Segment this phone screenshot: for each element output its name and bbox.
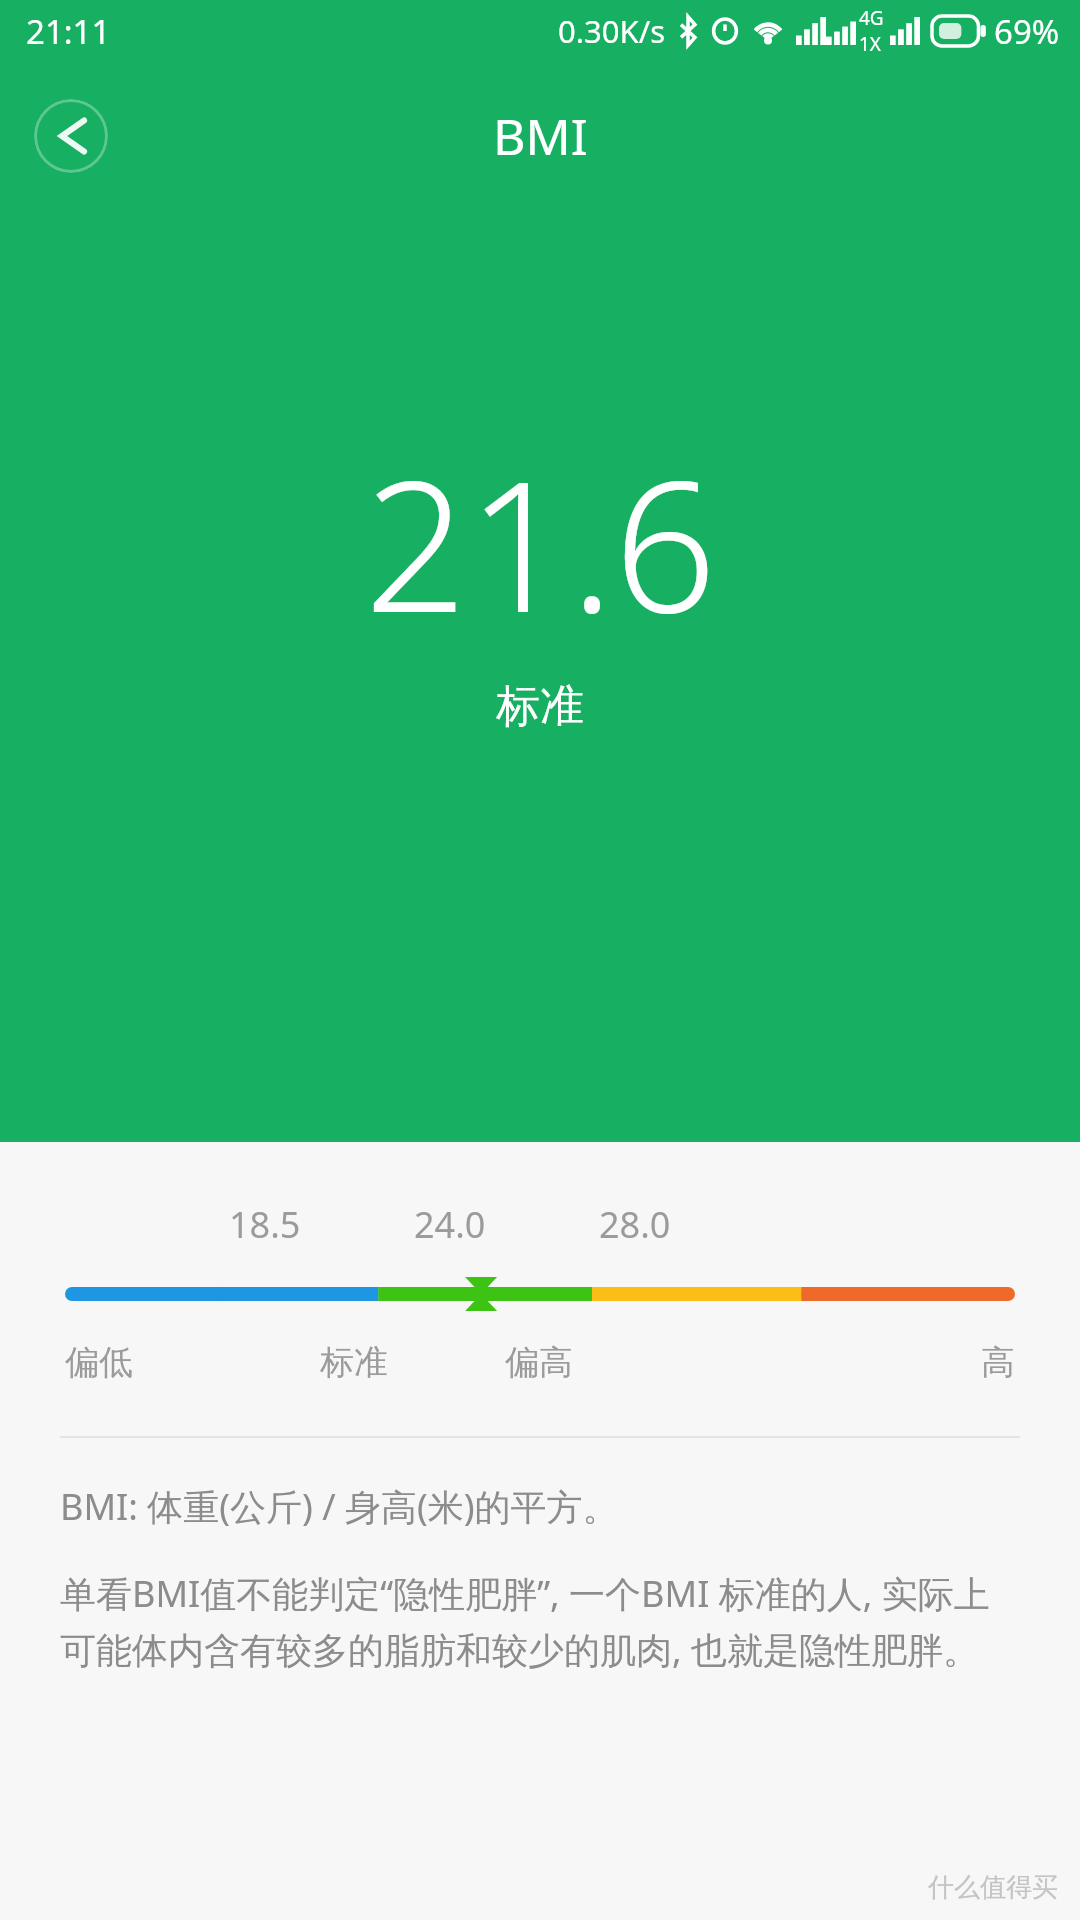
staticText: 28.0 <box>599 1200 671 1246</box>
staticText: 偏高 <box>505 1341 573 1384</box>
staticText: 18.5 <box>229 1200 301 1246</box>
staticText: 偏低 <box>65 1341 133 1384</box>
staticText: 1X <box>859 31 882 57</box>
staticText: 高 <box>981 1341 1015 1384</box>
staticText: 标准 <box>496 679 584 734</box>
staticText: 4G <box>859 5 884 31</box>
button[interactable]: Back <box>34 99 108 173</box>
staticText: 21.6 <box>364 420 717 665</box>
staticText: BMI <box>493 102 588 170</box>
staticText: 单看BMI值不能判定“隐性肥胖”, 一个BMI 标准的人, 实际上可能体内含有较… <box>60 1569 1020 1674</box>
staticText: 标准 <box>320 1341 388 1384</box>
staticText: 0.30K/s <box>558 10 666 52</box>
staticText: 24.0 <box>414 1200 486 1246</box>
staticText: 21:11 <box>26 9 111 54</box>
staticText: 什么值得买 <box>928 1871 1058 1904</box>
staticText: BMI: 体重(公斤) / 身高(米)的平方。 <box>60 1482 619 1531</box>
staticText: 69% <box>994 9 1060 54</box>
